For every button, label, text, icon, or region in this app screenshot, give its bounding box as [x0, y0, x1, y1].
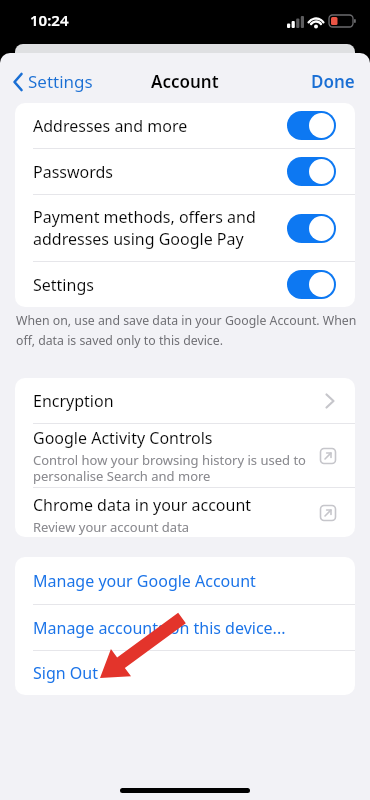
button[interactable]: Done	[311, 70, 355, 93]
staticText: 10:24	[30, 10, 69, 30]
button[interactable]: Chrome data in your account	[15, 488, 355, 537]
button[interactable]: Settings	[12, 70, 93, 93]
button[interactable]	[287, 157, 336, 186]
button[interactable]: Google Activity Controls	[15, 424, 355, 487]
button[interactable]: Settings	[15, 262, 355, 307]
button[interactable]: Manage accounts on this device...	[15, 605, 355, 650]
staticText: Payment methods, offers and addresses us…	[33, 206, 287, 250]
staticText: When on, use and save data in your Googl…	[16, 312, 357, 348]
button[interactable]: Encryption	[15, 378, 355, 423]
staticText: Encryption	[33, 390, 325, 412]
staticText: Control how your browsing history is use…	[33, 451, 306, 484]
staticText: Done	[311, 70, 355, 93]
button[interactable]	[287, 214, 336, 243]
staticText: Manage your Google Account	[33, 570, 256, 592]
staticText: Passwords	[33, 161, 287, 183]
button[interactable]	[287, 111, 336, 140]
staticText: Addresses and more	[33, 115, 287, 137]
button[interactable]: Addresses and more	[15, 103, 355, 148]
button[interactable]: Manage your Google Account	[15, 557, 355, 604]
staticText: Settings	[33, 274, 287, 296]
button[interactable]	[287, 270, 336, 299]
staticText: Chrome data in your account	[33, 494, 252, 516]
button[interactable]: Passwords	[15, 149, 355, 194]
staticText: Google Activity Controls	[33, 427, 213, 449]
staticText: Review your account data	[33, 518, 190, 536]
staticText: Account	[151, 70, 219, 93]
staticText: Settings	[28, 70, 93, 93]
button[interactable]: Sign Out	[15, 651, 355, 695]
staticText: Manage accounts on this device...	[33, 617, 286, 639]
button[interactable]: Payment methods, offers and addresses us…	[15, 195, 355, 261]
staticText: Sign Out	[33, 662, 98, 684]
